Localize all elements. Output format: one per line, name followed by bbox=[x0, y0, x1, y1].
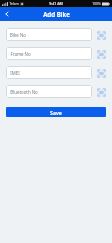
staticText: Bluetooth No bbox=[10, 89, 38, 95]
staticText: Add Bike bbox=[43, 10, 70, 18]
button[interactable]: IMEI bbox=[6, 66, 92, 79]
staticText: Save bbox=[50, 109, 62, 116]
button[interactable]: Save bbox=[6, 107, 106, 117]
staticText: IMEI bbox=[10, 70, 20, 76]
staticText: Telcm bbox=[9, 1, 19, 6]
button[interactable]: Bluetooth No bbox=[6, 85, 92, 98]
staticText: Frame No bbox=[10, 51, 31, 57]
button[interactable]: Bike No bbox=[6, 28, 92, 41]
staticText: Bike No bbox=[10, 32, 26, 38]
button[interactable]: Scan Bluetooth No bbox=[96, 87, 106, 97]
staticText: 9:41 AM bbox=[49, 1, 63, 6]
button[interactable]: Scan IMEI bbox=[96, 68, 106, 78]
button[interactable]: Back bbox=[0, 7, 14, 21]
button[interactable]: Scan Bike No bbox=[96, 30, 106, 40]
button[interactable]: Scan Frame No bbox=[96, 49, 106, 59]
staticText: 100% bbox=[92, 1, 101, 6]
button[interactable]: Frame No bbox=[6, 47, 92, 60]
